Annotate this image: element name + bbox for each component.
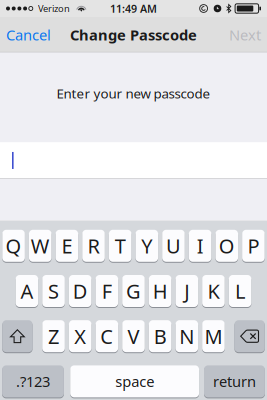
staticText: .?123 (16, 372, 50, 391)
staticText: H (153, 278, 168, 304)
button[interactable]: B (149, 320, 171, 352)
staticText: F (102, 278, 112, 304)
button[interactable]: Q (2, 230, 25, 262)
staticText: Y (141, 232, 152, 259)
button[interactable]: A (16, 275, 38, 307)
staticText: D (73, 278, 88, 304)
button[interactable]: R (82, 230, 105, 262)
button[interactable]: L (229, 275, 251, 307)
staticText: 11:49 AM (110, 1, 157, 16)
button[interactable]: space (70, 365, 199, 397)
button[interactable]: K (202, 275, 225, 307)
staticText: return (213, 372, 256, 391)
button[interactable]: U (162, 230, 185, 262)
button[interactable]: C (96, 320, 118, 352)
staticText: T (115, 232, 126, 259)
staticText: K (207, 278, 219, 304)
button[interactable]: X (69, 320, 91, 352)
staticText: B (154, 323, 167, 349)
staticText: X (74, 323, 86, 349)
button[interactable]: M (202, 320, 225, 352)
staticText: N (179, 323, 194, 349)
staticText: V (127, 323, 139, 349)
staticText: U (166, 232, 181, 259)
button[interactable]: Next (223, 17, 267, 52)
staticText: R (87, 232, 99, 259)
staticText: P (247, 232, 259, 259)
button[interactable]: Y (135, 230, 158, 262)
button[interactable]: F (96, 275, 118, 307)
staticText: Verizon (38, 2, 70, 15)
staticText: I (197, 232, 204, 259)
button[interactable]: H (149, 275, 171, 307)
button[interactable]: V (122, 320, 145, 352)
button[interactable]: T (109, 230, 131, 262)
button[interactable]: Z (42, 320, 65, 352)
button[interactable]: D (69, 275, 91, 307)
staticText: Enter your new passcode (56, 84, 210, 102)
button[interactable]: Shift (2, 320, 32, 352)
staticText: J (184, 278, 189, 304)
staticText: A (20, 278, 33, 304)
button[interactable]: return (204, 365, 265, 397)
staticText: L (235, 278, 245, 304)
staticText: Q (6, 232, 22, 259)
staticText: space (115, 372, 154, 391)
staticText: Z (48, 323, 59, 349)
staticText: C (100, 323, 113, 349)
staticText: E (61, 232, 72, 259)
staticText: G (126, 278, 141, 304)
staticText: Change Passcode (70, 25, 197, 44)
button[interactable]: J (175, 275, 198, 307)
staticText: M (204, 323, 222, 349)
button[interactable]: E (56, 230, 78, 262)
button[interactable]: P (242, 230, 265, 262)
staticText: Next (229, 25, 261, 44)
staticText: S (48, 278, 59, 304)
button[interactable]: I (189, 230, 211, 262)
button[interactable]: .?123 (2, 365, 64, 397)
button[interactable]: W (29, 230, 51, 262)
button[interactable]: O (215, 230, 238, 262)
staticText: O (219, 232, 235, 259)
staticText: Cancel (6, 25, 51, 44)
staticText: W (31, 232, 50, 259)
button[interactable]: Cancel (0, 17, 57, 52)
button[interactable]: S (42, 275, 65, 307)
button[interactable]: N (175, 320, 198, 352)
button[interactable]: G (122, 275, 145, 307)
button[interactable]: Delete (234, 320, 265, 352)
